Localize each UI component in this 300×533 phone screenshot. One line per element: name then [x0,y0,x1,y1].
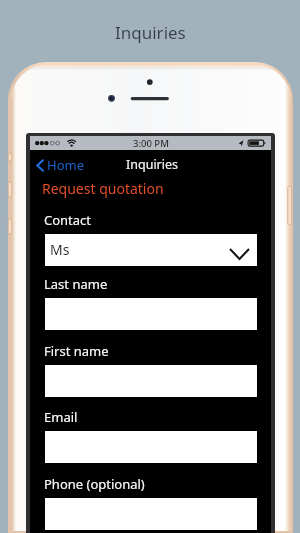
staticText: Ms [50,240,70,259]
staticText: Inquiries [126,156,179,173]
staticText: Last name [44,275,108,293]
staticText: Inquiries [115,21,186,44]
button[interactable]: Ms [45,234,257,266]
button[interactable]: Home [35,154,92,176]
other: Expand contact title [229,248,250,260]
staticText: Contact [44,211,92,229]
staticText: Email [44,408,78,426]
staticText: Request quotation [42,179,164,198]
staticText: 3:00 PM [133,137,169,150]
staticText: First name [44,342,109,360]
staticText: Phone (optional) [44,475,145,493]
staticText: Home [47,156,84,174]
